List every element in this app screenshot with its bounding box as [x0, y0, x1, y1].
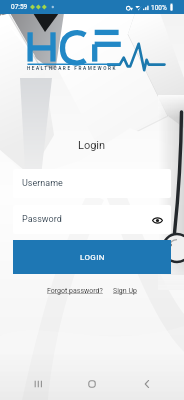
button[interactable]: Username: [13, 169, 171, 198]
staticText: 100%: [151, 4, 167, 12]
staticText: Login: [78, 139, 106, 152]
staticText: LOGIN: [80, 253, 105, 262]
button[interactable]: Forgot password?: [47, 287, 103, 295]
button[interactable]: Sign Up: [113, 287, 137, 295]
staticText: HEALTHCARE FRAMEWORK: [27, 66, 117, 72]
button[interactable]: Home: [75, 368, 109, 400]
staticText: Password: [22, 214, 62, 225]
button[interactable]: LOGIN: [13, 240, 171, 274]
staticText: 07:59: [11, 3, 28, 11]
button[interactable]: Password: [13, 205, 171, 234]
button[interactable]: Recent apps: [21, 368, 55, 400]
button[interactable]: Back: [130, 368, 164, 400]
button[interactable]: Show password: [149, 212, 165, 228]
staticText: Username: [22, 178, 63, 189]
